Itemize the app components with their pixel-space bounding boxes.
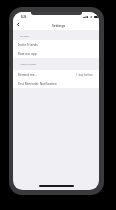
staticText: Remind me... <box>18 73 38 77</box>
staticText: Invite Friends <box>18 43 38 47</box>
staticText: 1 day before <box>76 73 93 77</box>
button[interactable]: Rate our app <box>13 49 99 58</box>
staticText: 8:26 <box>21 15 27 19</box>
staticText: Test Reminder Notification <box>18 82 57 86</box>
staticText: Settings <box>52 23 66 27</box>
staticText: Rate our app <box>18 52 37 56</box>
button[interactable]: Test Reminder Notification <box>13 79 99 88</box>
button[interactable]: Remind me... <box>13 70 99 79</box>
button[interactable]: Invite Friends <box>13 40 99 49</box>
button[interactable]: Back <box>13 20 22 29</box>
staticText: GENERAL <box>20 35 30 38</box>
staticText: NOTIFICATIONS <box>20 63 37 66</box>
